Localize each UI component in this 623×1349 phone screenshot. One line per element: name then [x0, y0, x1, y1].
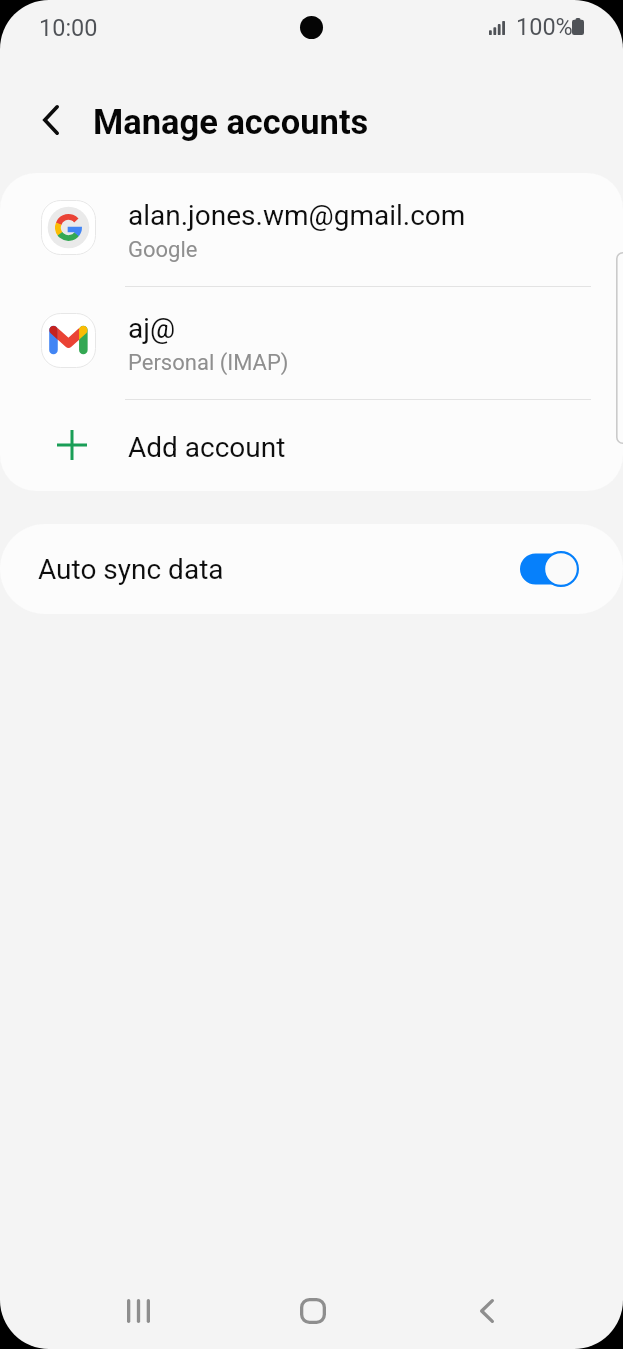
staticText: Google [128, 237, 198, 263]
button[interactable]: Recent apps [94, 1277, 183, 1345]
staticText: Manage accounts [93, 102, 369, 142]
staticText: 100% [516, 13, 573, 41]
button[interactable]: Back [442, 1277, 531, 1345]
staticText: 10:00 [39, 14, 98, 42]
button[interactable]: Home [268, 1277, 357, 1345]
staticText: alan.jones.wm@gmail.com [128, 199, 466, 232]
button[interactable]: alan.jones.wm@gmail.com [0, 173, 623, 286]
button[interactable]: aj@ [0, 286, 623, 399]
staticText: aj@ [128, 312, 176, 345]
button[interactable]: Auto sync data [0, 524, 623, 614]
button[interactable]: Navigate up [24, 93, 78, 147]
button[interactable]: Add account [0, 399, 623, 491]
staticText: Add account [128, 431, 286, 464]
staticText: Personal (IMAP) [128, 350, 289, 376]
staticText: Auto sync data [38, 553, 224, 586]
